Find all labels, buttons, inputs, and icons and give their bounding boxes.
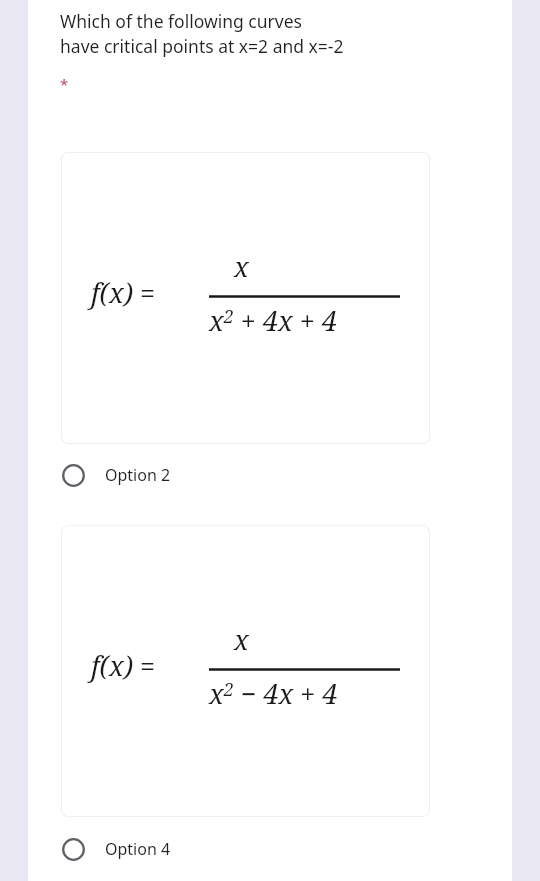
- staticText: x2 − 4x + 4: [209, 675, 338, 712]
- staticText: x: [234, 248, 249, 285]
- staticText: x2 + 4x + 4: [209, 302, 337, 339]
- other: Option 4: [62, 838, 85, 861]
- staticText: Which of the following curves have criti…: [60, 9, 344, 58]
- button[interactable]: f(x) =: [61, 152, 430, 444]
- staticText: Option 2: [105, 464, 171, 486]
- button[interactable]: f(x) =: [61, 525, 430, 817]
- staticText: f(x) =: [91, 647, 156, 684]
- button[interactable]: Option 4: [55, 829, 375, 869]
- staticText: x: [234, 621, 249, 658]
- button[interactable]: Option 2: [55, 455, 375, 495]
- staticText: f(x) =: [91, 274, 156, 311]
- staticText: Option 4: [105, 838, 171, 860]
- other: Option 2: [62, 464, 85, 487]
- staticText: *: [60, 74, 69, 94]
